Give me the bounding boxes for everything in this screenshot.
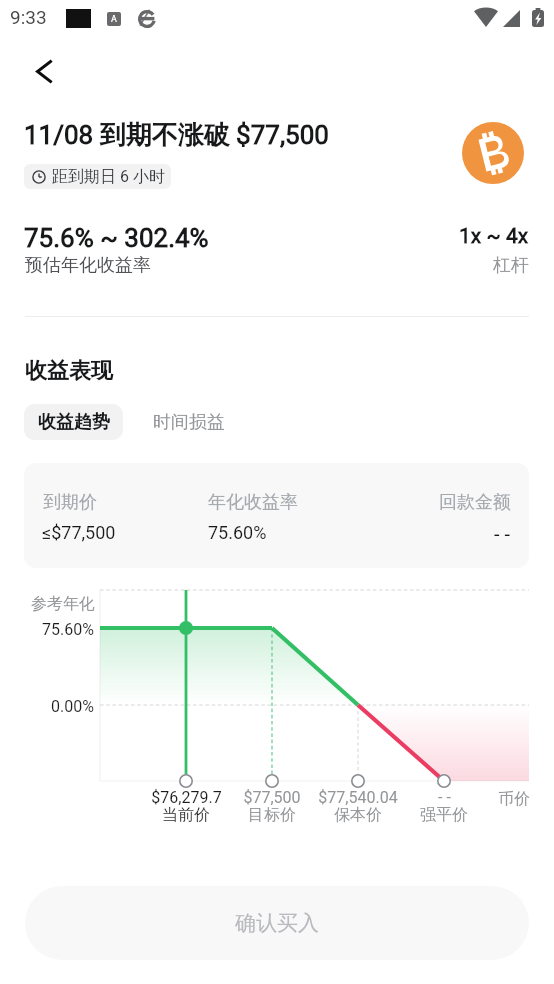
staticText: 杠杆 xyxy=(493,254,529,277)
staticText: 参考年化 xyxy=(31,594,95,614)
button[interactable]: 收益趋势 xyxy=(24,404,123,440)
staticText: 确认买入 xyxy=(235,910,319,936)
staticText: $77,500 xyxy=(243,788,301,807)
staticText: 11/08 到期不涨破 $77,500 xyxy=(24,119,329,152)
staticText: 保本价 xyxy=(334,805,382,825)
button[interactable]: Back xyxy=(23,50,65,92)
staticText: 当前价 xyxy=(162,805,210,825)
staticText: 9:33 xyxy=(10,6,47,28)
staticText: 0.00% xyxy=(51,697,94,716)
staticText: 75.6% ~ 302.4% xyxy=(24,223,209,253)
staticText: 币价 xyxy=(498,789,530,809)
staticText: - - xyxy=(494,522,511,545)
staticText: 时间损益 xyxy=(153,411,225,434)
staticText: 75.60% xyxy=(208,522,267,543)
staticText: - - xyxy=(438,788,451,807)
staticText: 年化收益率 xyxy=(208,491,298,514)
staticText: A xyxy=(111,14,117,25)
staticText: 目标价 xyxy=(248,805,296,825)
button[interactable]: 确认买入 xyxy=(25,886,529,960)
staticText: $77,540.04 xyxy=(318,788,398,807)
staticText: 回款金额 xyxy=(439,491,511,514)
staticText: 收益趋势 xyxy=(38,411,110,434)
staticText: 预估年化收益率 xyxy=(25,254,151,277)
staticText: 到期价 xyxy=(43,491,97,514)
staticText: 75.60% xyxy=(42,620,94,639)
staticText: 距到期日 6 小时 xyxy=(52,167,165,187)
staticText: 收益表现 xyxy=(25,357,113,385)
button[interactable]: 时间损益 xyxy=(139,404,239,440)
staticText: 1x ~ 4x xyxy=(459,224,529,249)
staticText: 强平价 xyxy=(420,805,468,825)
staticText: $76,279.7 xyxy=(151,788,222,807)
staticText: ≤$77,500 xyxy=(42,522,116,543)
